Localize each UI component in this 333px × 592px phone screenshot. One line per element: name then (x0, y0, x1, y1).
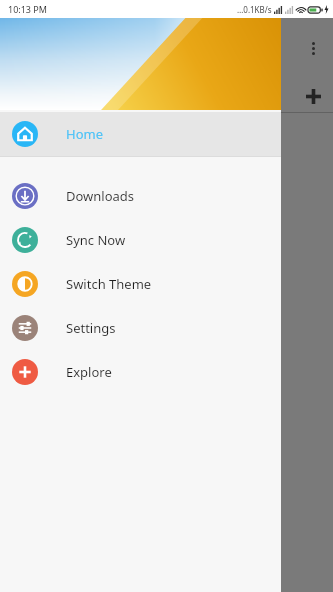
button[interactable]: Home (0, 112, 281, 156)
staticText: Explore (66, 363, 112, 381)
button[interactable]: ပေး၊ နိုင်ငံ ပါများ... (6, 113, 333, 218)
button[interactable]: ပြယ်စားသ များ (6, 230, 333, 332)
button[interactable]: Switch Theme (0, 262, 281, 306)
button[interactable]: Downloads (0, 174, 281, 218)
staticText: ပြယ်စားသ များ (8, 306, 44, 332)
button[interactable]: Add (301, 84, 325, 108)
button[interactable]: More options (303, 38, 323, 58)
staticText: Sync Now (66, 231, 126, 249)
staticText: Downloads (66, 187, 135, 205)
staticText: Switch Theme (66, 275, 152, 293)
staticText: ပေး၊ နိုင်ငံ ပါများ... (8, 189, 39, 218)
button[interactable]: Settings (0, 306, 281, 350)
staticText: 10:13 PM (8, 3, 47, 15)
staticText: Settings (66, 319, 116, 337)
button[interactable]: Sync Now (0, 218, 281, 262)
staticText: …0.1KB/s (237, 4, 272, 15)
button[interactable]: Explore (0, 350, 281, 394)
staticText: Home (66, 125, 103, 143)
